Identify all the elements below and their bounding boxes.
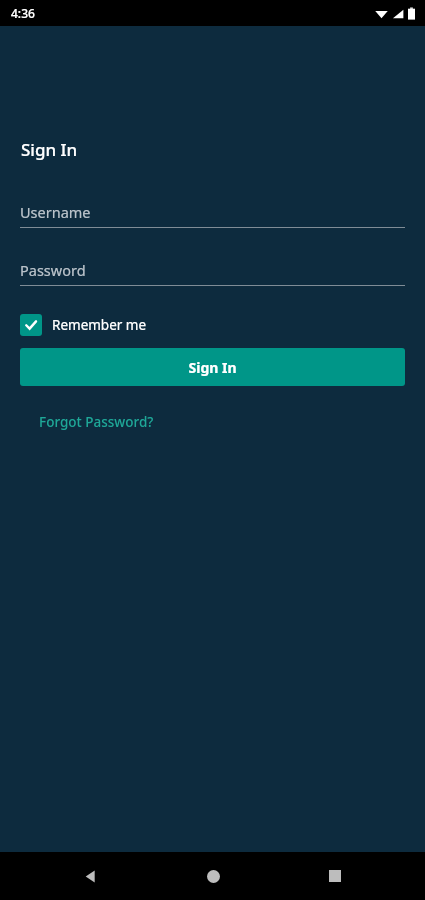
staticText: Remember me <box>52 316 147 334</box>
staticText: Username <box>20 202 91 222</box>
button[interactable]: Sign In <box>20 348 405 386</box>
button[interactable]: Username <box>20 201 405 223</box>
button[interactable]: Forgot Password? <box>30 408 163 436</box>
button[interactable]: Back <box>72 858 108 894</box>
staticText: Sign In <box>188 358 237 377</box>
staticText: 4:36 <box>11 5 35 21</box>
button[interactable]: Recent apps <box>317 858 353 894</box>
button[interactable]: Remember me <box>20 314 147 336</box>
staticText: Forgot Password? <box>39 413 154 431</box>
staticText: Sign In <box>21 138 78 161</box>
button[interactable]: Password <box>20 259 405 281</box>
button[interactable]: Home <box>195 858 231 894</box>
staticText: Password <box>20 260 86 280</box>
